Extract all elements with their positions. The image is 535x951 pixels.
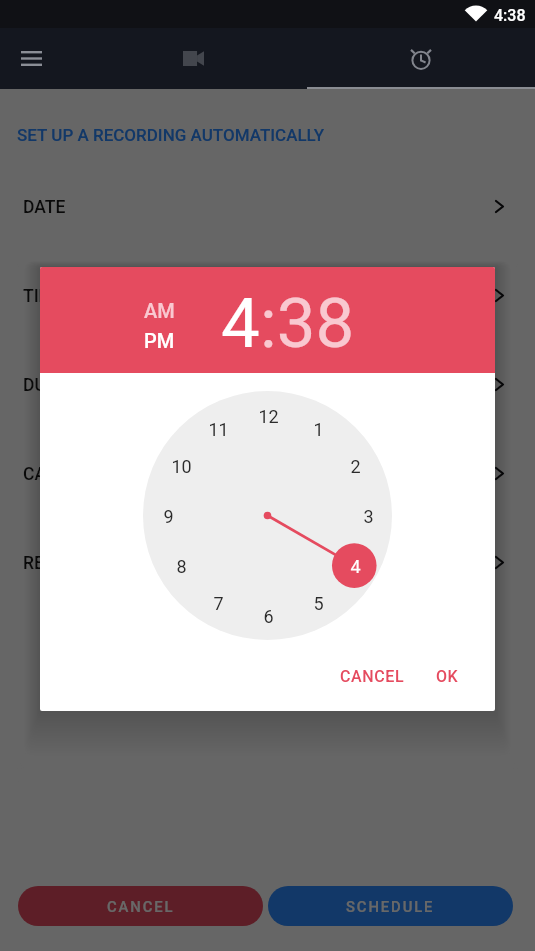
staticText: 12 xyxy=(258,406,279,427)
button[interactable]: 4 xyxy=(335,546,375,586)
staticText: 1 xyxy=(313,419,324,440)
button[interactable]: DATE xyxy=(0,160,535,249)
staticText: 6 xyxy=(263,606,274,627)
staticText: 7 xyxy=(213,593,224,614)
button[interactable]: AM xyxy=(144,299,175,322)
button[interactable]: 12 xyxy=(248,396,288,436)
staticText: RECURRENCE xyxy=(23,553,133,574)
button[interactable]: PM xyxy=(144,329,175,352)
button[interactable]: RECURRENCE xyxy=(0,516,535,605)
button[interactable]: TIME xyxy=(0,249,535,338)
button[interactable]: 5 xyxy=(298,583,338,623)
button[interactable]: 9 xyxy=(148,496,188,536)
staticText: DATE xyxy=(23,197,66,218)
button[interactable]: Scheduled recordings tab xyxy=(307,28,535,89)
button[interactable]: Open navigation menu xyxy=(11,39,51,79)
staticText: CANCEL xyxy=(107,898,175,915)
button[interactable]: DURATION xyxy=(0,338,535,427)
staticText: 11 xyxy=(208,419,229,440)
staticText: OK xyxy=(436,667,459,686)
button[interactable]: CANCEL xyxy=(332,659,413,694)
staticText: 3 xyxy=(363,506,374,527)
button[interactable]: 8 xyxy=(161,546,201,586)
staticText: 9 xyxy=(163,506,174,527)
button[interactable]: Recordings tab xyxy=(79,28,307,89)
button[interactable]: CANCEL xyxy=(18,886,263,926)
staticText: 4 xyxy=(350,556,361,577)
button[interactable]: 11 xyxy=(198,409,238,449)
staticText: TIME xyxy=(23,286,64,307)
button[interactable]: 3 xyxy=(348,496,388,536)
staticText: SET UP A RECORDING AUTOMATICALLY xyxy=(17,125,325,145)
staticText: SCHEDULE xyxy=(346,898,435,915)
button[interactable]: CAMERA xyxy=(0,427,535,516)
staticText: DURATION xyxy=(23,375,108,396)
staticText: CAMERA xyxy=(23,464,94,485)
button[interactable]: 10 xyxy=(161,446,201,486)
button[interactable]: 4 xyxy=(221,283,260,364)
staticText: 4:38 xyxy=(494,6,526,25)
staticText: 8 xyxy=(176,556,187,577)
staticText: AM xyxy=(144,299,175,322)
button[interactable]: 1 xyxy=(298,409,338,449)
button[interactable]: OK xyxy=(428,659,467,694)
button[interactable]: 6 xyxy=(248,596,288,636)
staticText: 10 xyxy=(171,456,192,477)
staticText: PM xyxy=(144,329,175,352)
staticText: 2 xyxy=(350,456,361,477)
staticText: CANCEL xyxy=(340,667,405,686)
button[interactable]: 2 xyxy=(335,446,375,486)
button[interactable]: SCHEDULE xyxy=(268,886,513,926)
button[interactable]: 7 xyxy=(198,583,238,623)
button[interactable]: :38 xyxy=(260,283,355,364)
staticText: 5 xyxy=(313,593,324,614)
